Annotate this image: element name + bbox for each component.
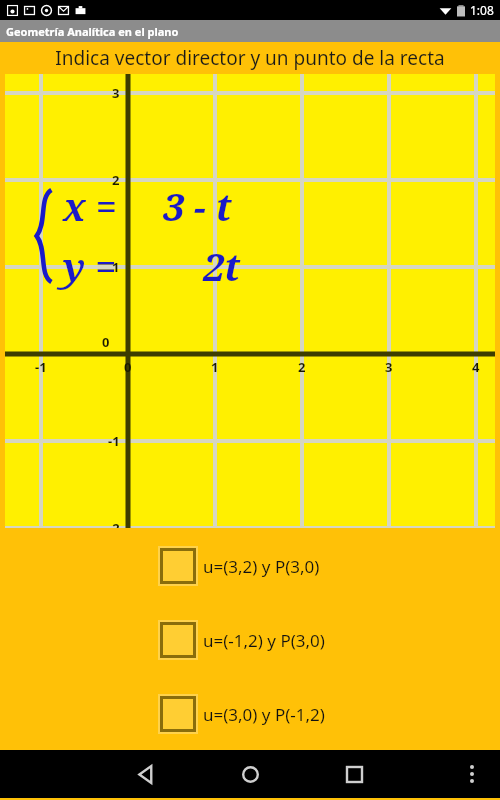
staticText: y = <box>63 240 117 292</box>
staticText: 1 <box>112 258 120 276</box>
staticText: 0 <box>102 333 110 351</box>
staticText: 2 <box>298 358 306 376</box>
staticText: 0 <box>124 358 132 376</box>
button[interactable]: More options <box>452 754 492 794</box>
staticText: u=(-1,2) y P(3,0) <box>203 629 325 652</box>
staticText: 2t <box>203 240 241 292</box>
staticText: 1:08 <box>470 2 494 18</box>
staticText: u=(3,2) y P(3,0) <box>203 555 320 578</box>
staticText: 3 <box>385 358 393 376</box>
staticText: -1 <box>108 432 120 450</box>
staticText: Geometría Analítica en el plano <box>6 24 179 39</box>
staticText: u=(3,0) y P(-1,2) <box>203 703 325 726</box>
staticText: 1 <box>211 358 219 376</box>
staticText: 4 <box>472 358 480 376</box>
button[interactable]: Recents <box>330 750 378 798</box>
staticText: 2 <box>112 171 120 189</box>
button[interactable]: Home <box>226 750 274 798</box>
button[interactable]: u=(3,2) y P(3,0) <box>0 546 500 586</box>
staticText: -2 <box>108 519 120 537</box>
staticText: 3 <box>112 84 120 102</box>
button[interactable]: u=(-1,2) y P(3,0) <box>0 620 500 660</box>
staticText: 3 − t <box>163 180 232 232</box>
staticText: Indica vector director y un punto de la … <box>55 45 445 71</box>
button[interactable]: u=(3,0) y P(-1,2) <box>0 694 500 734</box>
button[interactable]: Back <box>122 750 170 798</box>
staticText: x = <box>63 180 118 232</box>
staticText: -1 <box>35 358 47 376</box>
